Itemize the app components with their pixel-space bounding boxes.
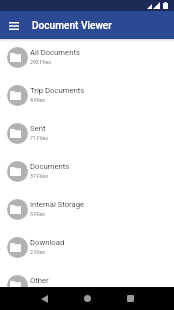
staticText: 293 Files <box>30 59 51 65</box>
staticText: Document Viewer <box>32 20 112 32</box>
button[interactable]: Recent apps <box>117 287 143 310</box>
button[interactable]: Internal Storage <box>0 190 174 228</box>
staticText: 37 Files <box>30 173 48 179</box>
staticText: 71 Files <box>30 135 48 141</box>
staticText: Other <box>30 276 49 285</box>
staticText: 2 Files <box>30 249 46 255</box>
button[interactable]: Documents <box>0 152 174 190</box>
button[interactable]: Home <box>74 287 100 310</box>
button[interactable]: Open navigation menu <box>4 16 23 35</box>
button[interactable]: Download <box>0 228 174 266</box>
button[interactable]: Sent <box>0 114 174 152</box>
staticText: Internal Storage <box>30 200 85 209</box>
button[interactable]: Back <box>31 287 57 310</box>
staticText: Sent <box>30 124 46 133</box>
staticText: 5 Files <box>30 211 46 217</box>
staticText: All Documents <box>30 48 80 57</box>
button[interactable]: All Documents <box>0 38 174 76</box>
staticText: 4 Files <box>30 97 46 103</box>
staticText: Trip Documents <box>30 86 85 95</box>
button[interactable]: Other <box>0 266 174 304</box>
button[interactable]: Trip Documents <box>0 76 174 114</box>
staticText: Download <box>30 238 65 247</box>
staticText: Documents <box>30 162 70 171</box>
